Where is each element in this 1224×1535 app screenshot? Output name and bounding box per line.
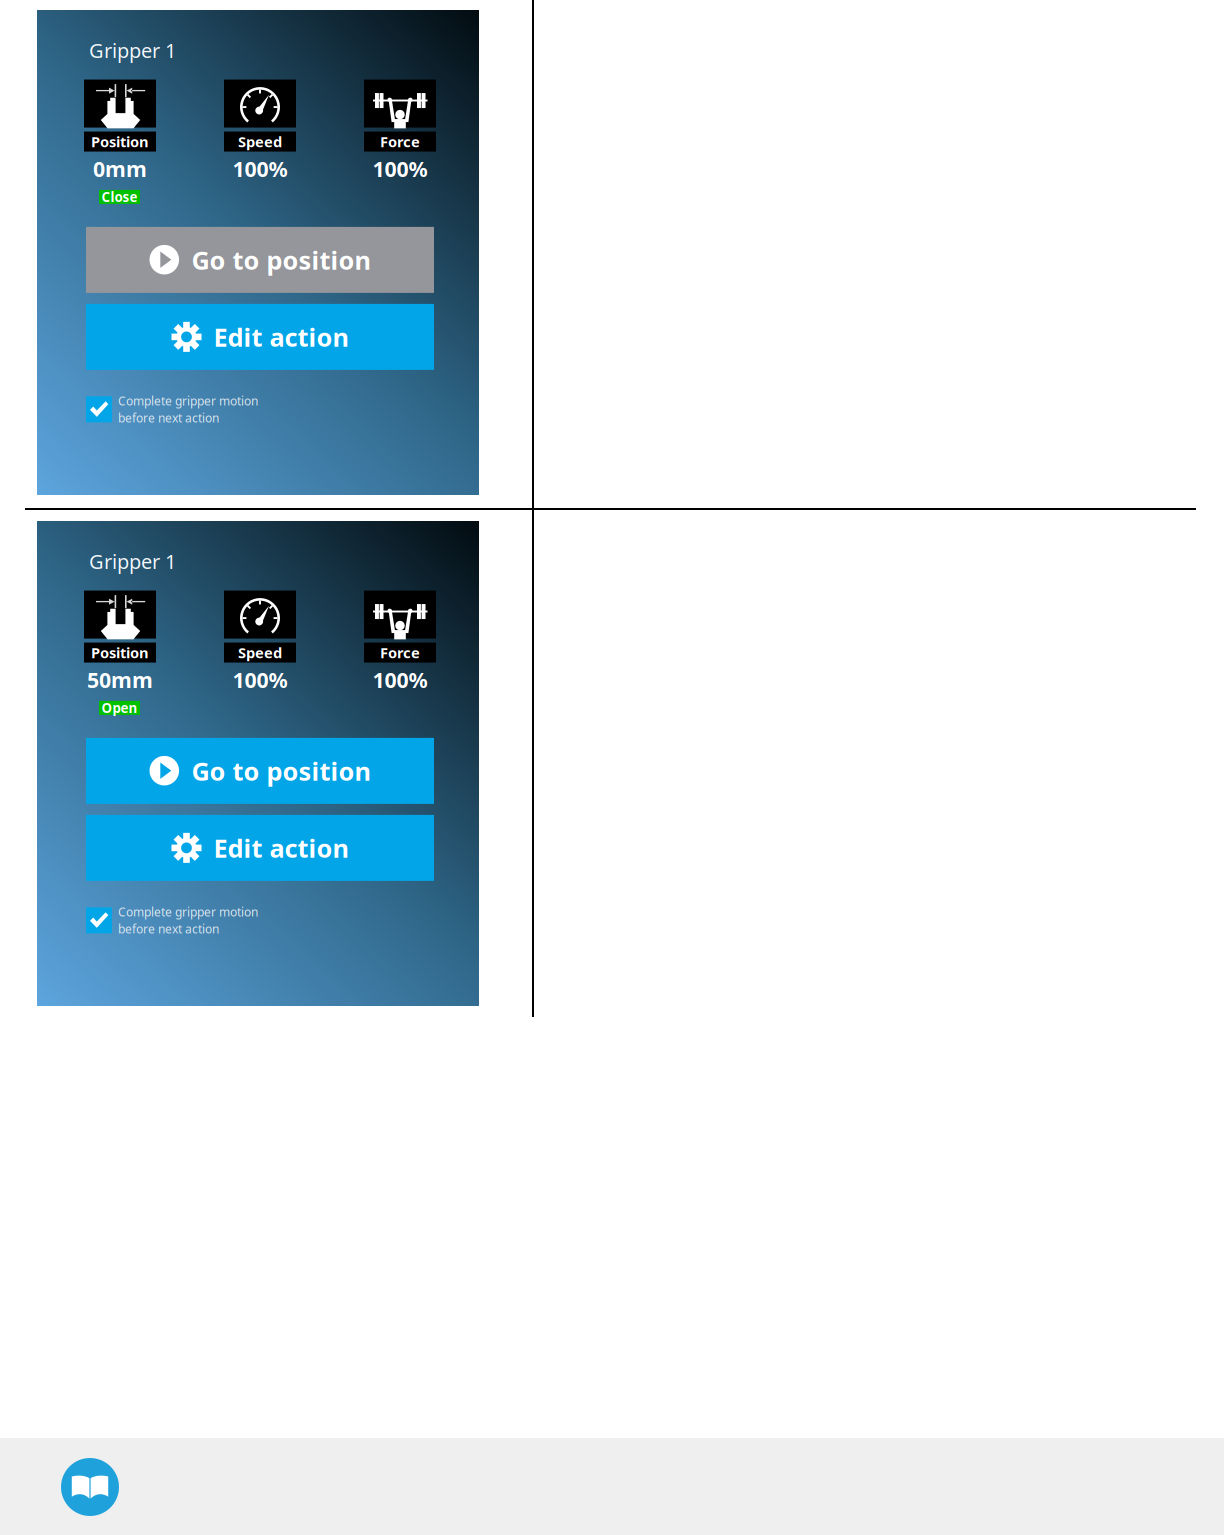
staticText: Gripper 1 [89, 548, 176, 575]
staticText: Go to position [191, 754, 370, 788]
button[interactable]: Open documentation [0, 1438, 119, 1516]
staticText: Go to position [191, 243, 370, 277]
staticText: Edit action [213, 320, 348, 354]
staticText: 100% [372, 155, 427, 183]
staticText: before next action [118, 921, 219, 937]
button[interactable]: Complete gripper motion [86, 393, 258, 426]
staticText: Complete gripper motion [118, 904, 258, 920]
staticText: Edit action [213, 831, 348, 865]
button[interactable]: Complete gripper motion [86, 904, 258, 937]
staticText: Force [380, 643, 420, 662]
button[interactable]: Go to position [86, 738, 434, 804]
button[interactable]: Edit action [86, 304, 434, 370]
staticText: 100% [232, 666, 287, 694]
staticText: Speed [238, 132, 282, 151]
staticText: before next action [118, 410, 219, 426]
staticText: 100% [232, 155, 287, 183]
button[interactable]: Go to position [86, 227, 434, 293]
staticText: Close [101, 188, 137, 206]
staticText: Open [101, 699, 137, 717]
staticText: Speed [238, 643, 282, 662]
staticText: Complete gripper motion [118, 393, 258, 409]
staticText: 0mm [93, 155, 147, 183]
staticText: 100% [372, 666, 427, 694]
staticText: Position [91, 132, 149, 151]
button[interactable]: Edit action [86, 815, 434, 881]
staticText: Position [91, 643, 149, 662]
staticText: Gripper 1 [89, 37, 176, 64]
staticText: 50mm [87, 666, 153, 694]
staticText: Force [380, 132, 420, 151]
